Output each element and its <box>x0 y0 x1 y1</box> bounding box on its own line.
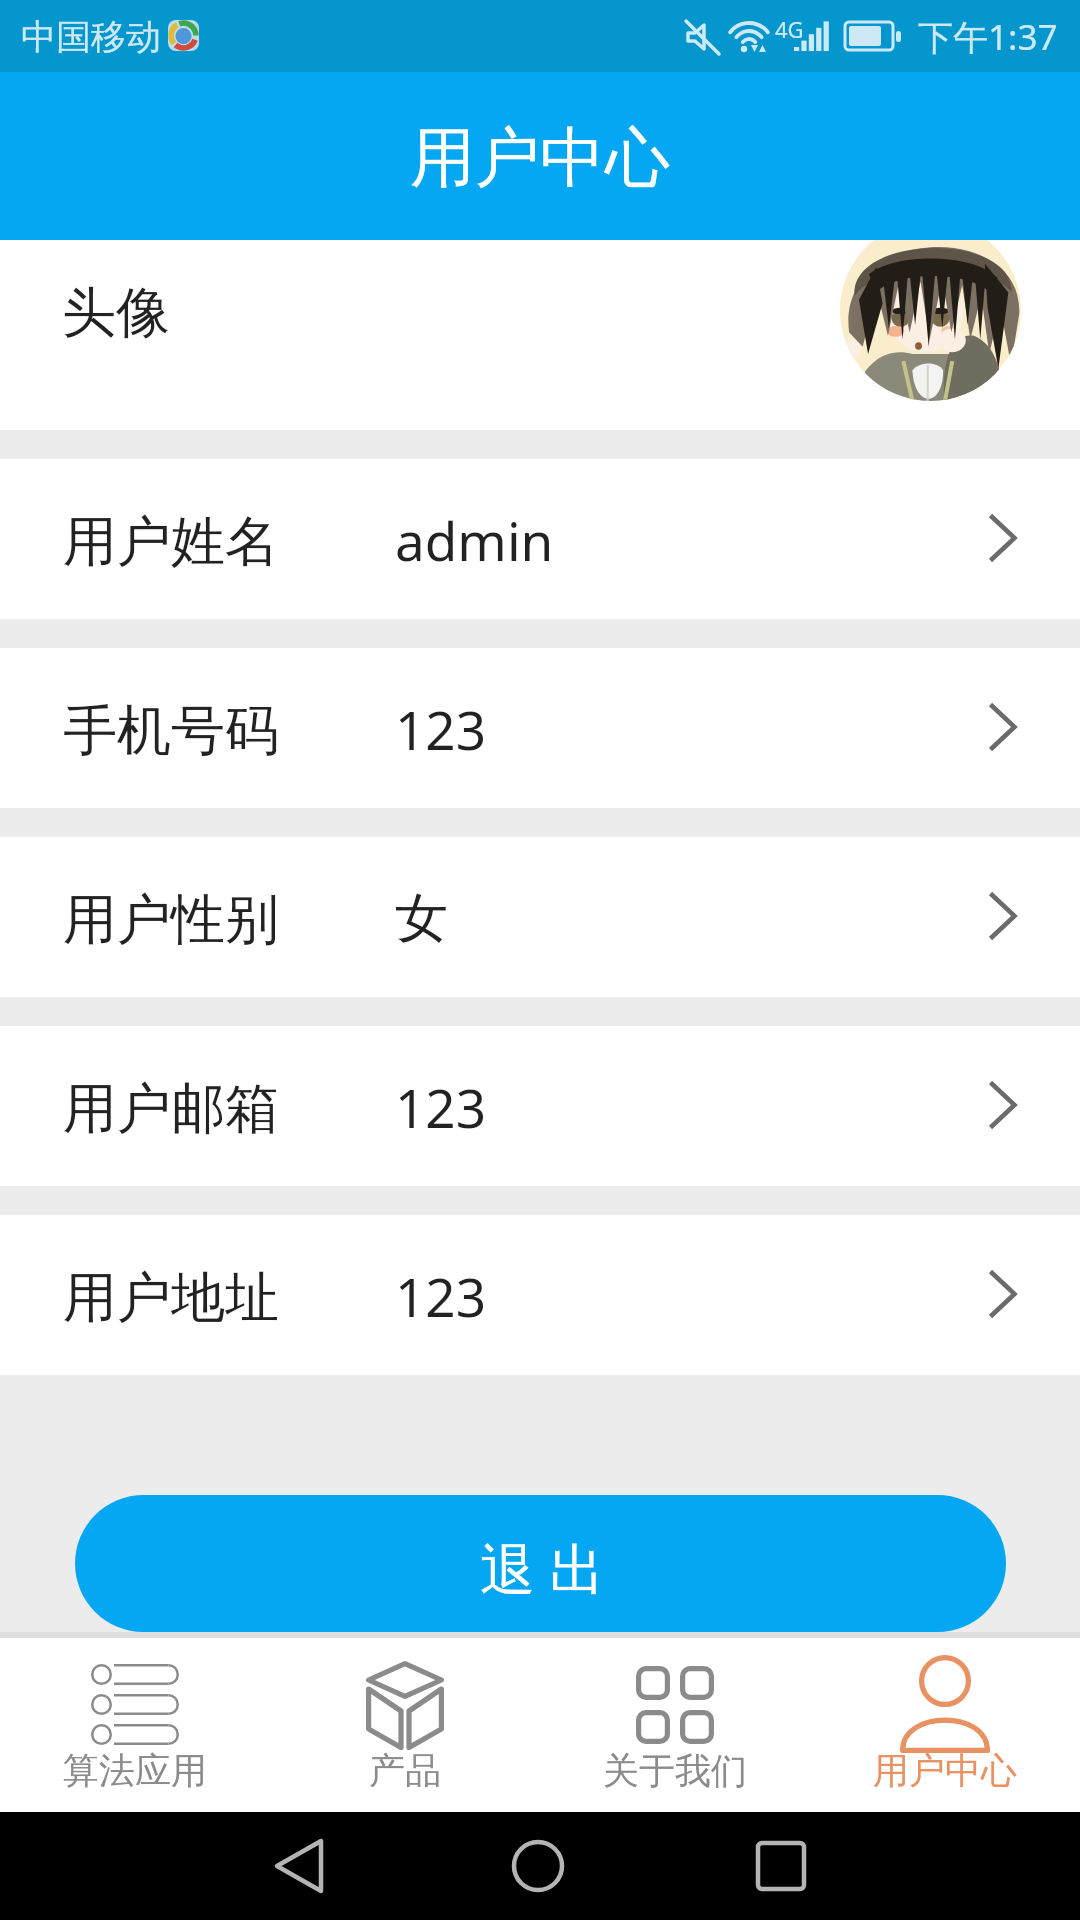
staticText: 手机号码 <box>63 697 279 765</box>
staticText: 女 <box>395 885 448 952</box>
staticText: 用户邮箱 <box>63 1075 279 1143</box>
button[interactable]: 用户性别 <box>0 837 1080 997</box>
staticText: 123 <box>395 1071 486 1143</box>
staticText: admin <box>395 504 554 576</box>
staticText: 中国移动 <box>21 15 161 59</box>
button[interactable]: 产品 <box>270 1638 540 1812</box>
button[interactable]: 算法应用 <box>0 1638 270 1812</box>
button[interactable]: 手机号码 <box>0 648 1080 808</box>
staticText: 用户地址 <box>63 1264 279 1332</box>
staticText: 用户性别 <box>63 886 279 954</box>
button[interactable]: 退 出 <box>75 1495 1006 1632</box>
staticText: 退 出 <box>480 1530 605 1605</box>
button[interactable]: 关于我们 <box>540 1638 810 1812</box>
staticText: 123 <box>395 1260 486 1332</box>
button[interactable]: 用户地址 <box>0 1215 1080 1375</box>
staticText: 下午1:37 <box>918 13 1058 61</box>
button[interactable]: 用户中心 <box>810 1638 1080 1812</box>
staticText: 关于我们 <box>603 1748 747 1793</box>
button[interactable]: 用户姓名 <box>0 459 1080 619</box>
staticText: 4G <box>775 14 804 44</box>
staticText: 用户姓名 <box>63 508 279 576</box>
staticText: 产品 <box>369 1748 441 1793</box>
staticText: 用户中心 <box>410 117 670 199</box>
staticText: 头像 <box>62 279 170 347</box>
staticText: 用户中心 <box>873 1748 1017 1793</box>
button[interactable]: 头像 <box>0 240 1080 430</box>
button[interactable]: 用户邮箱 <box>0 1026 1080 1186</box>
button[interactable]: 头像 <box>840 220 1021 401</box>
staticText: 123 <box>395 693 486 765</box>
staticText: 算法应用 <box>63 1748 207 1793</box>
